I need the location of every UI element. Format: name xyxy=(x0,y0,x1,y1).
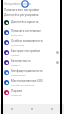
staticText: Панель xyxy=(11,53,20,56)
staticText: Настройки системы xyxy=(4,2,31,6)
staticText: Аккаунты xyxy=(11,93,22,96)
staticText: Дисплей и яркость xyxy=(11,20,39,24)
button[interactable]: Быстрые настройки xyxy=(0,47,64,57)
staticText: Защита xyxy=(11,63,20,66)
staticText: Конфиденциальность xyxy=(11,69,43,73)
staticText: Показать системные xyxy=(11,29,42,33)
staticText: Отключено xyxy=(11,43,25,46)
button[interactable]: Конфиденциальность xyxy=(0,67,64,77)
staticText: Особые возможности xyxy=(11,39,43,43)
staticText: Безопасность xyxy=(11,59,31,63)
button[interactable]: Местоположение SOS xyxy=(0,77,64,87)
button[interactable]: Показать все настройки xyxy=(4,8,39,12)
button[interactable]: Пароли xyxy=(0,87,64,97)
button[interactable]: Back xyxy=(2,104,22,114)
staticText: Разрешения xyxy=(11,73,26,76)
staticText: Включено xyxy=(11,33,23,36)
staticText: Местоположение SOS xyxy=(11,79,43,83)
other: Info xyxy=(56,51,59,54)
button[interactable]: Показать системные xyxy=(0,27,64,37)
button[interactable]: Recents xyxy=(42,104,62,114)
other: Info xyxy=(56,61,59,64)
button[interactable]: Home xyxy=(22,104,42,114)
button[interactable]: Безопасность xyxy=(0,57,64,67)
staticText: Быстрые настройки xyxy=(11,49,40,53)
button[interactable]: Дисплей и регулировка xyxy=(4,13,39,17)
staticText: Показать все настройки xyxy=(4,8,39,12)
button[interactable]: Дисплей и яркость xyxy=(0,17,64,27)
staticText: Дисплей и регулировка xyxy=(4,13,39,17)
staticText: Службы экстренной xyxy=(11,83,35,86)
staticText: Пароли xyxy=(11,89,23,93)
button[interactable]: Особые возможности xyxy=(0,37,64,47)
